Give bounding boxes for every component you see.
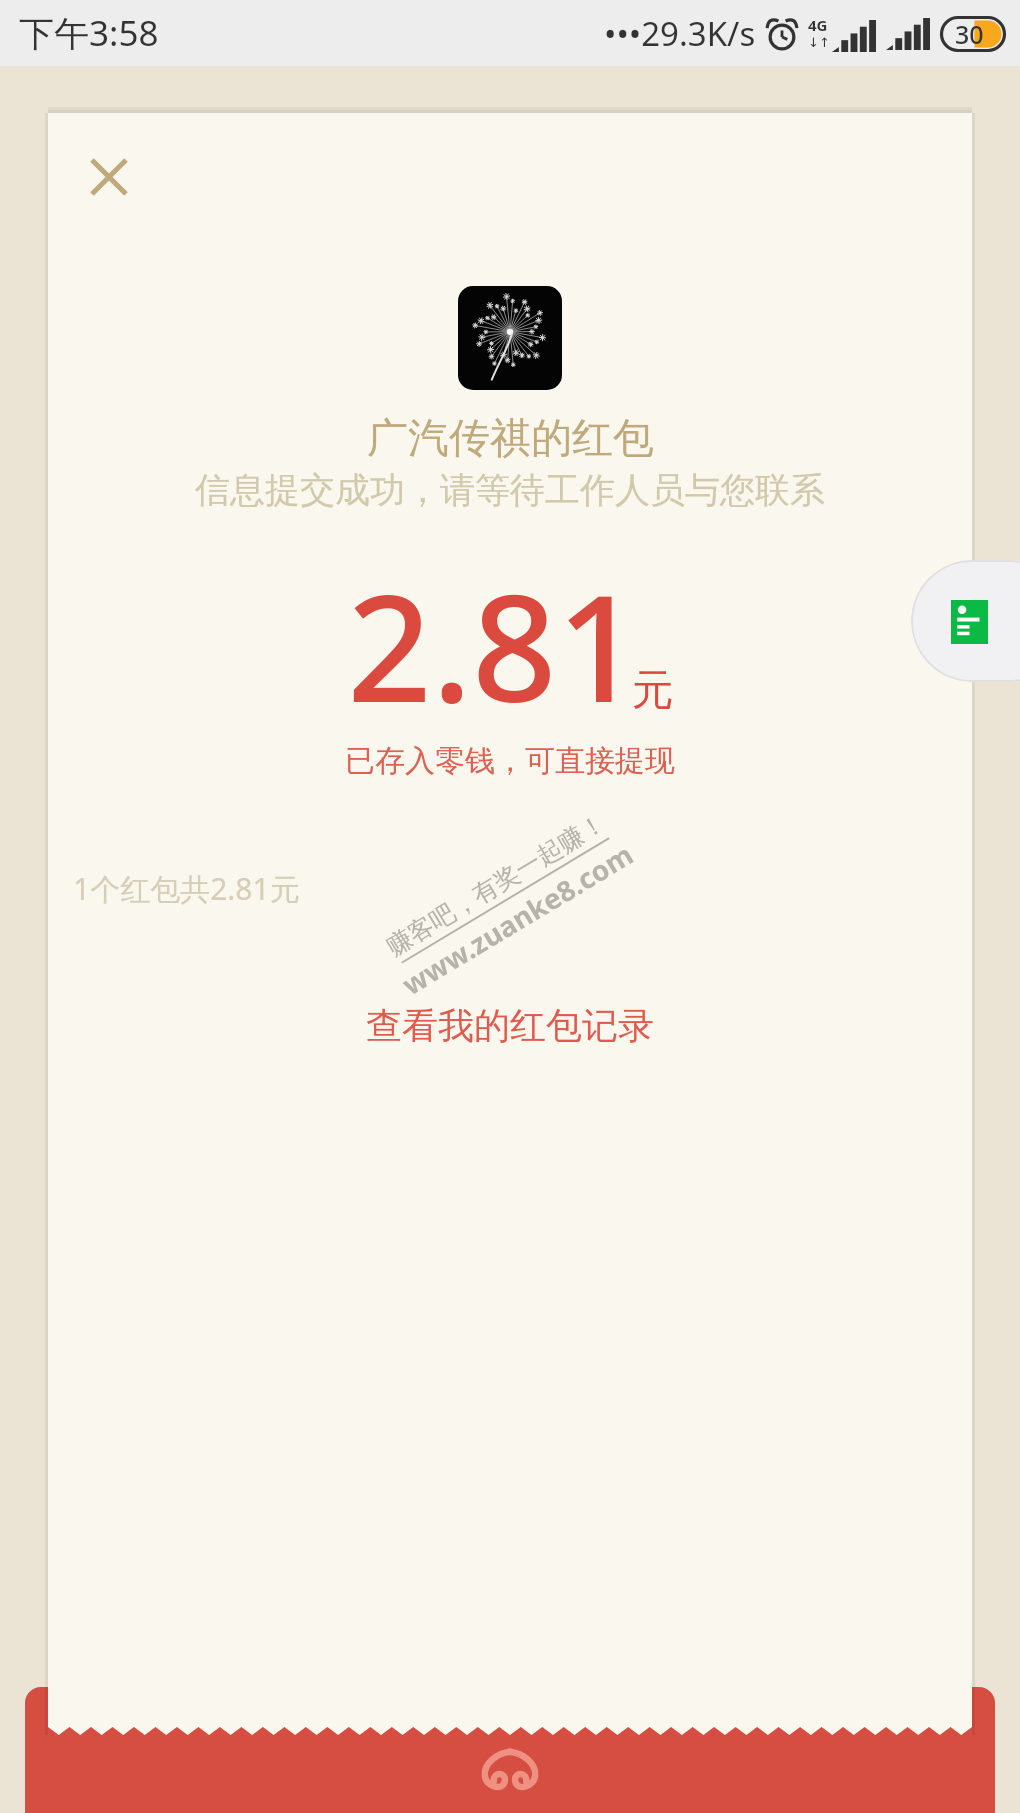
staticText: 30 (955, 17, 984, 51)
staticText: 广汽传祺的红包 (367, 413, 654, 465)
staticText: 下午3:58 (19, 9, 159, 57)
staticText: 2.81 (347, 544, 642, 746)
staticText: 赚客吧，有奖一起赚！ (381, 807, 611, 962)
staticText: 1个红包共2.81元 (73, 868, 300, 909)
staticText: ↓↑ (808, 35, 830, 50)
button[interactable]: Notes (911, 560, 1020, 682)
staticText: •••29.3K/s (604, 11, 756, 56)
button[interactable]: Sender avatar (458, 286, 562, 390)
button[interactable]: Close (72, 140, 146, 214)
staticText: 元 (632, 664, 674, 717)
staticText: 查看我的红包记录 (366, 1003, 654, 1048)
staticText: www.zuanke8.com (395, 835, 640, 1003)
button[interactable]: 查看我的红包记录 (356, 997, 664, 1054)
staticText: 已存入零钱，可直接提现 (345, 742, 675, 780)
staticText: 4G (808, 15, 828, 35)
staticText: 信息提交成功，请等待工作人员与您联系 (195, 468, 825, 512)
